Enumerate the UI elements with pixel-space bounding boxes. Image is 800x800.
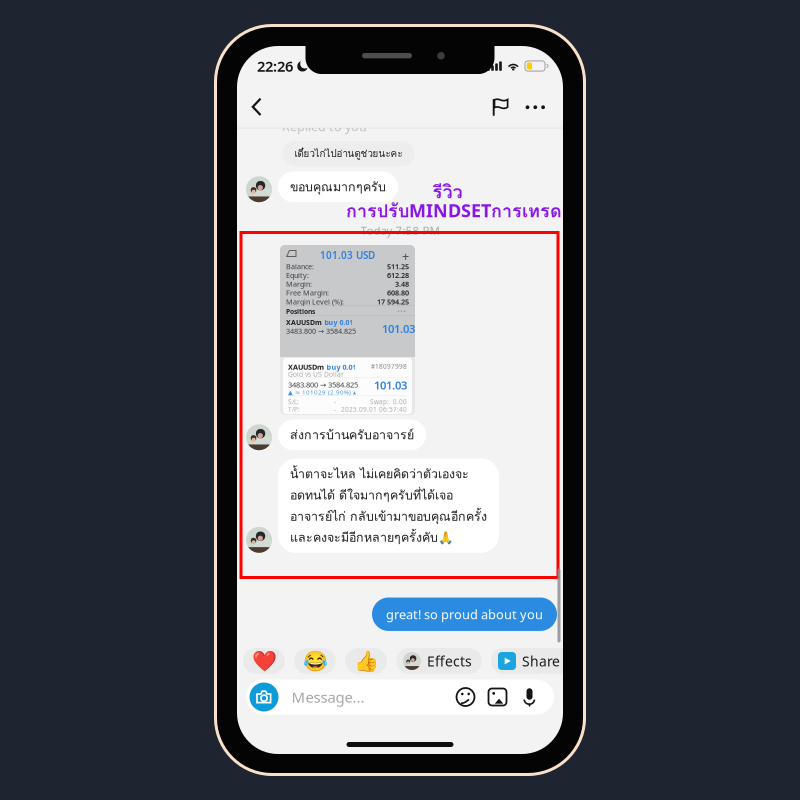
staticText: - [334, 405, 336, 414]
button[interactable]: Camera [249, 682, 278, 711]
staticText: 👍 [353, 649, 378, 673]
staticText: #18097998 [371, 362, 407, 371]
staticText: Balance: [286, 261, 314, 271]
staticText: Swap: 0.00 [370, 397, 407, 406]
staticText: Effects [427, 652, 472, 670]
staticText: 511.25 [387, 261, 409, 271]
staticText: ขอบคุณมากๆครับ [290, 177, 386, 197]
staticText: อดทนได้ ดีใจมากๆครับที่ได้เจอ [290, 485, 453, 505]
staticText: Today 7:58 PM [360, 222, 439, 238]
button[interactable]: Photo library [487, 687, 507, 707]
staticText: XAUUSDm [286, 317, 322, 327]
staticText: Gold vs US Dollar [288, 369, 344, 379]
staticText: + [402, 247, 409, 265]
staticText: - [334, 397, 336, 406]
button[interactable]: More options [517, 95, 554, 119]
staticText: buy 0.01 [324, 317, 353, 327]
staticText: อาจารย์ไก่ กลับเข้ามาขอบคุณอีกครั้ง [290, 506, 487, 526]
staticText: ส่งการบ้านครับอาจารย์ [290, 425, 414, 445]
staticText: 3.48 [395, 279, 409, 289]
staticText: Equity: [286, 270, 309, 280]
staticText: เดี๋ยวไก่ไปอ่านดูช่วยนะคะ [294, 146, 402, 161]
staticText: 2025.09.01 06:57:40 [341, 405, 407, 414]
staticText: การปรับMINDSETการเทรด [346, 196, 562, 225]
staticText: 612.28 [387, 270, 409, 280]
staticText: Replied to you [282, 118, 367, 135]
button[interactable]: Report [486, 92, 517, 122]
staticText: Margin: [286, 279, 312, 289]
staticText: XAUUSDm [288, 362, 324, 372]
staticText: Positions [286, 307, 315, 316]
staticText: 101.03 [382, 321, 415, 336]
button[interactable]: Stickers [455, 687, 475, 707]
staticText: Share post [522, 652, 593, 670]
staticText: 😂 [302, 649, 327, 673]
staticText: รีวิว [432, 177, 462, 206]
button[interactable]: Share post [491, 648, 603, 674]
staticText: buy 0.01 [326, 362, 356, 372]
staticText: 3483.800 → 3584.825 [288, 379, 358, 390]
staticText: 608.80 [387, 288, 409, 298]
staticText: 101.03 [374, 377, 407, 393]
staticText: และคงจะมีอีกหลายๆครั้งคับ🙏 [290, 528, 453, 547]
button[interactable]: React ❤️ [243, 648, 285, 674]
staticText: T/P: [288, 405, 300, 414]
button[interactable]: React 😂 [294, 648, 336, 674]
staticText: Free Margin: [286, 288, 329, 298]
button[interactable]: React 👍 [345, 648, 387, 674]
button[interactable]: Voice message [519, 686, 539, 707]
button[interactable]: Back [244, 90, 270, 124]
staticText: 22:26 [257, 56, 293, 76]
staticText: 101.03 USD [320, 248, 375, 262]
staticText: 3483.800 → 3584.825 [286, 326, 356, 336]
staticText: great! so proud about you [386, 605, 543, 623]
staticText: 17 594.25 [377, 297, 409, 306]
staticText: S/L: [288, 397, 299, 406]
staticText: ▲ ≈ 101029 (2.90%) ▴ [288, 388, 356, 396]
staticText: ❤️ [251, 649, 276, 673]
staticText: Message... [291, 687, 364, 707]
staticText: น้ำตาจะไหล ไม่เคยคิดว่าตัวเองจะ [290, 464, 469, 484]
button[interactable]: Effects [396, 648, 482, 674]
staticText: Margin Level (%): [286, 297, 344, 306]
